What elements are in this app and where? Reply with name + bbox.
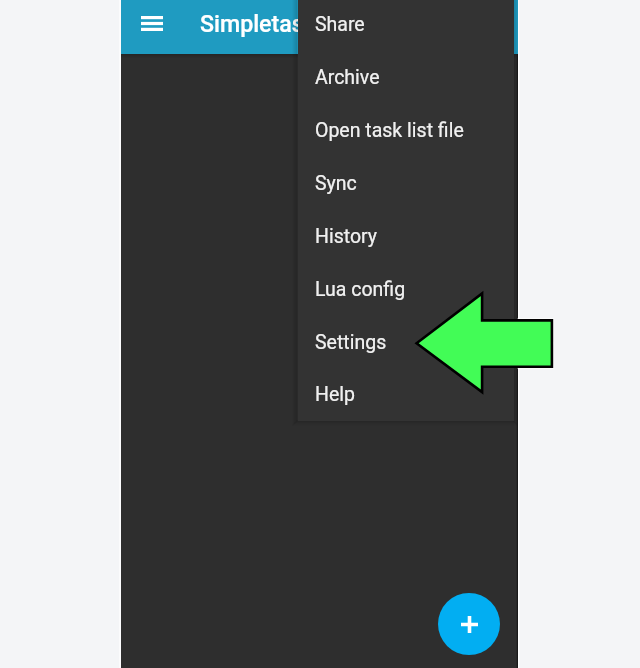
button[interactable]: Archive	[298, 51, 514, 104]
staticText: Simpletask	[200, 10, 316, 37]
button[interactable]: History	[298, 210, 514, 263]
staticText: Help	[315, 383, 355, 406]
button[interactable]: Add task	[438, 593, 500, 655]
button[interactable]: Settings	[298, 316, 514, 369]
staticText: Archive	[315, 66, 380, 89]
button[interactable]: Lua config	[298, 263, 514, 316]
button[interactable]: Open task list file	[298, 104, 514, 157]
staticText: Open task list file	[315, 119, 464, 142]
button[interactable]: Help	[298, 369, 514, 419]
staticText: Lua config	[315, 278, 406, 301]
button[interactable]: Share	[298, 0, 514, 51]
staticText: Settings	[315, 331, 387, 354]
staticText: Sync	[315, 172, 357, 195]
button[interactable]: Open navigation drawer	[131, 2, 173, 44]
button[interactable]: Sync	[298, 157, 514, 210]
staticText: History	[315, 225, 378, 248]
staticText: Share	[315, 13, 365, 36]
